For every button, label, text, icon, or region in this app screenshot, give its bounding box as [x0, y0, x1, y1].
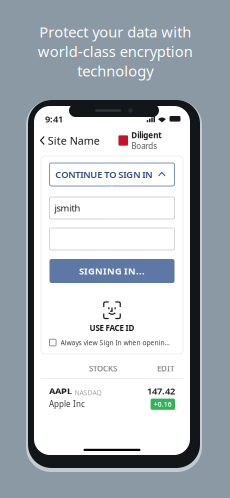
staticText: USE FACE ID — [89, 322, 134, 333]
button[interactable]: Always view Sign In when opening app — [49, 339, 56, 346]
staticText: Protect your data with world-class encry… — [37, 22, 192, 80]
staticText: NASDAQ — [75, 388, 102, 397]
button[interactable]: USE FACE ID — [89, 302, 134, 333]
staticText: +0.16 — [154, 400, 172, 409]
button[interactable]: Site Name — [34, 129, 104, 152]
staticText: 9:41 — [45, 113, 63, 125]
button[interactable]: CONTINUE TO SIGN IN — [49, 163, 174, 186]
staticText: AAPL — [49, 385, 72, 397]
staticText: jsmith — [54, 202, 80, 214]
staticText: CONTINUE TO SIGN IN — [55, 168, 152, 181]
staticText: 147.42 — [147, 385, 175, 397]
staticText: Site Name — [48, 133, 100, 148]
button[interactable]: EDIT — [157, 363, 175, 374]
staticText: STOCKS — [89, 363, 117, 374]
staticText: SIGNING IN... — [79, 265, 145, 277]
staticText: Apple Inc — [49, 399, 85, 409]
staticText: EDIT — [157, 363, 175, 374]
staticText: Boards — [131, 140, 157, 151]
staticText: Diligent — [131, 130, 161, 140]
staticText: Always view Sign In when opening app — [61, 338, 170, 347]
button[interactable]: SIGNING IN... — [49, 259, 174, 283]
